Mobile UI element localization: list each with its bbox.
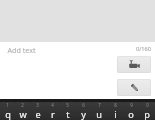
- button[interactable]: 0: [139, 102, 155, 120]
- staticText: Add text: [7, 45, 36, 55]
- staticText: e: [35, 108, 41, 120]
- button[interactable]: 3: [30, 102, 45, 120]
- button[interactable]: 9: [123, 102, 139, 120]
- button[interactable]: 8: [107, 102, 123, 120]
- staticText: 5: [66, 102, 69, 108]
- staticText: q: [5, 108, 11, 120]
- staticText: 1: [6, 102, 9, 108]
- button[interactable]: 4: [45, 102, 60, 120]
- button[interactable]: 1: [0, 102, 15, 120]
- staticText: 4: [51, 102, 54, 108]
- staticText: p: [144, 108, 150, 120]
- button[interactable]: 5: [60, 102, 75, 120]
- staticText: y: [81, 108, 86, 120]
- button[interactable]: Attach video: [117, 56, 151, 73]
- staticText: o: [128, 108, 134, 120]
- staticText: w: [19, 108, 27, 120]
- button[interactable]: Attach file: [117, 79, 151, 96]
- staticText: 8: [114, 102, 117, 108]
- button[interactable]: 7: [91, 102, 107, 120]
- staticText: t: [66, 108, 70, 120]
- button[interactable]: Add text: [0, 42, 112, 99]
- staticText: i: [114, 108, 117, 120]
- button[interactable]: 2: [15, 102, 30, 120]
- staticText: u: [96, 108, 102, 120]
- staticText: 3: [36, 102, 39, 108]
- staticText: r: [51, 108, 55, 120]
- staticText: 0: [146, 102, 149, 108]
- staticText: 9: [130, 102, 133, 108]
- staticText: 2: [21, 102, 24, 108]
- staticText: 6: [82, 102, 85, 108]
- staticText: 7: [98, 102, 101, 108]
- staticText: 0/160: [136, 45, 151, 53]
- button[interactable]: 6: [75, 102, 91, 120]
